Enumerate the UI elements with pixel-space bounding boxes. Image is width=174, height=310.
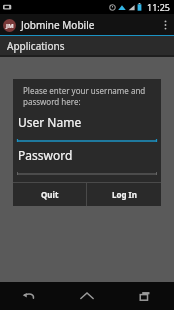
staticText: Jobmine Mobile (21, 18, 95, 32)
staticText: Please enter your username and password … (23, 85, 146, 107)
button[interactable]: Applications (0, 36, 174, 55)
button[interactable]: User Name (17, 114, 157, 143)
button[interactable]: Home (58, 282, 116, 310)
staticText: 11:25 (147, 1, 171, 13)
staticText: Applications (7, 39, 65, 53)
button[interactable]: Back (0, 282, 58, 310)
button[interactable]: Log In (87, 183, 161, 206)
staticText: Log In (112, 189, 137, 200)
staticText: User Name (18, 114, 82, 130)
button[interactable]: Password (17, 147, 157, 176)
button[interactable]: Recent apps (116, 282, 174, 310)
staticText: Password (18, 147, 73, 163)
staticText: JM (6, 22, 14, 30)
staticText: Quit (41, 189, 59, 200)
button[interactable]: More options (156, 14, 174, 35)
button[interactable]: Quit (13, 183, 86, 206)
